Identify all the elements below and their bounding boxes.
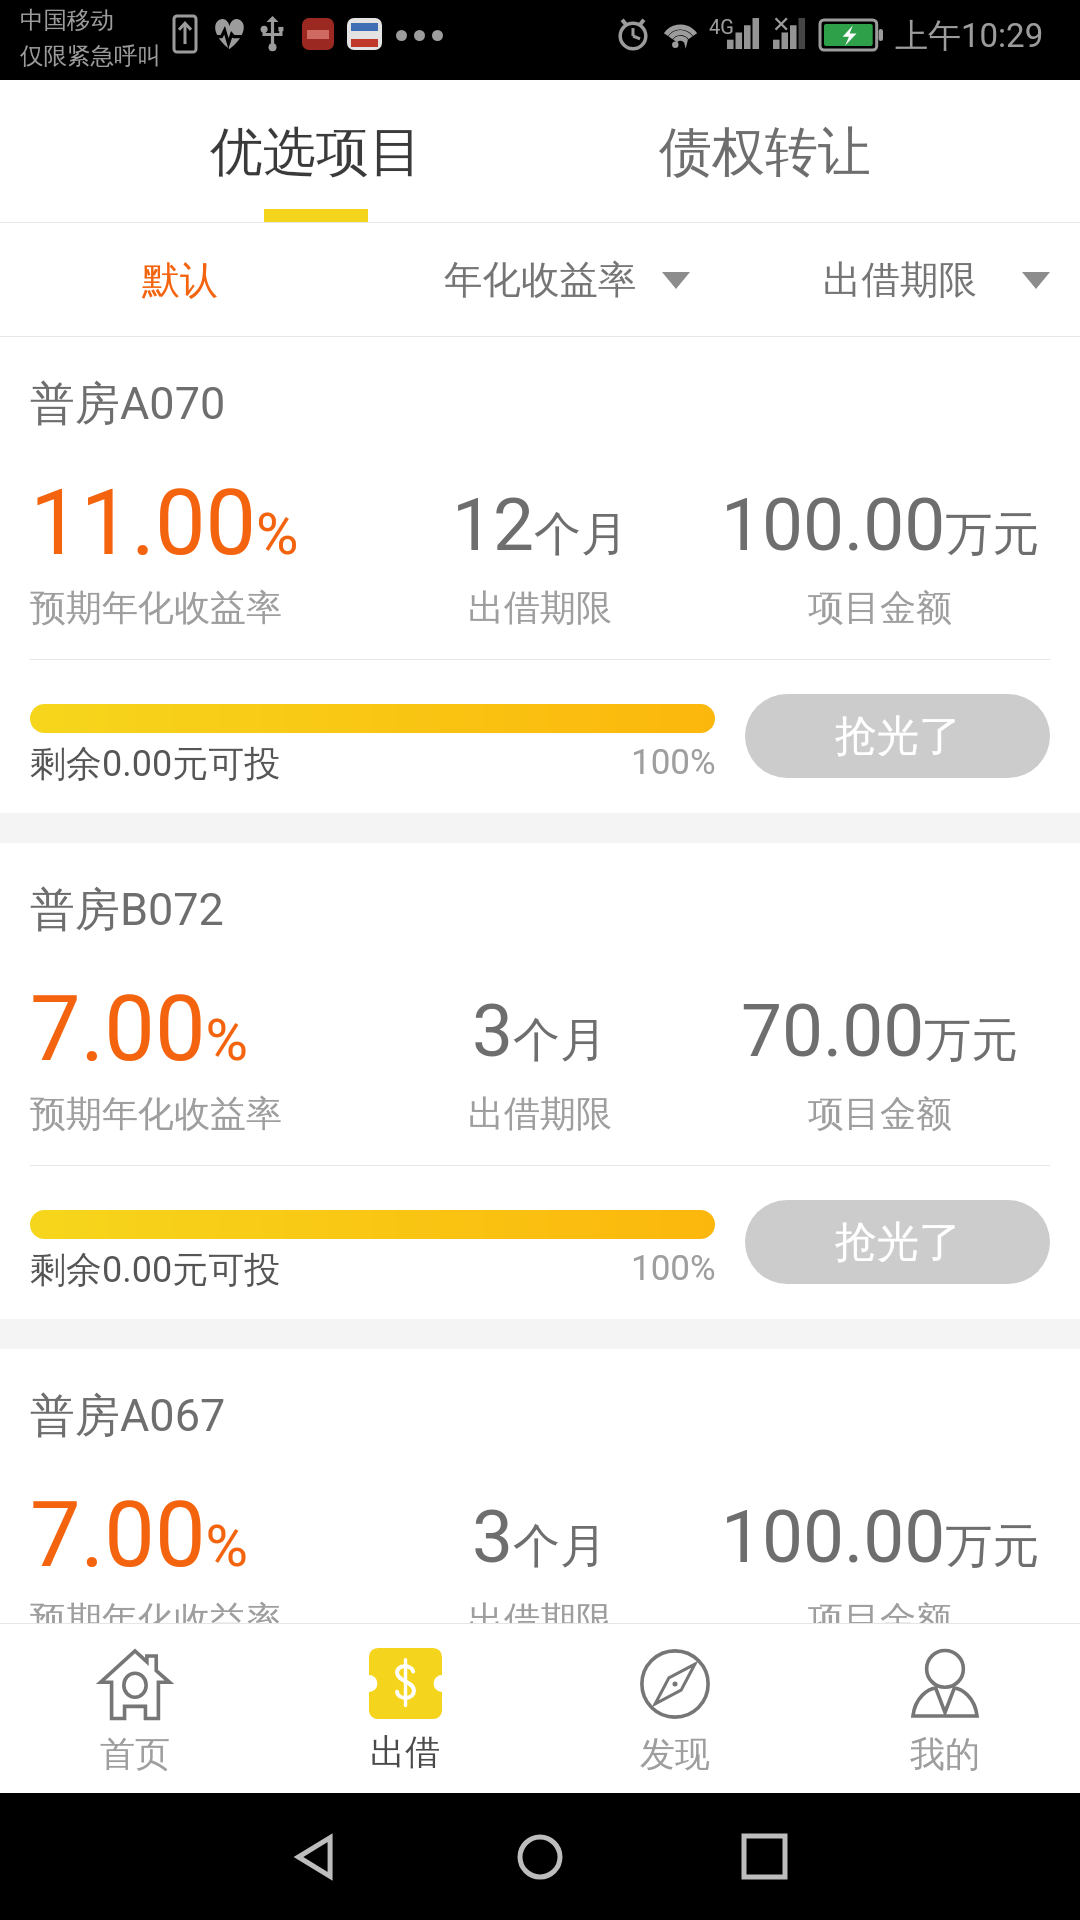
button[interactable]: 优选项目 bbox=[91, 80, 540, 223]
button[interactable]: Recent apps bbox=[652, 1793, 876, 1920]
staticText: 预期年化收益率 bbox=[30, 585, 282, 630]
button[interactable]: 出借期限 bbox=[720, 223, 1080, 337]
button[interactable]: 债权转让 bbox=[540, 80, 989, 223]
staticText: 上午10:29 bbox=[895, 15, 1044, 57]
staticText: 默认 bbox=[142, 256, 218, 304]
staticText: 出借 bbox=[370, 1730, 440, 1774]
staticText: 项目金额 bbox=[808, 1597, 952, 1642]
button[interactable]: Home bbox=[428, 1793, 652, 1920]
staticText: 出借期限 bbox=[468, 585, 612, 630]
staticText: 抢光了 bbox=[835, 710, 961, 763]
button[interactable]: 抢光了 bbox=[745, 694, 1050, 778]
staticText: 发现 bbox=[640, 1732, 710, 1776]
staticText: 100% bbox=[631, 1754, 716, 1795]
staticText: 100% bbox=[631, 742, 716, 783]
button[interactable]: 出借 bbox=[270, 1624, 540, 1793]
button[interactable]: 默认 bbox=[0, 223, 360, 337]
staticText: 优选项目 bbox=[210, 119, 422, 186]
staticText: 100.00万元 bbox=[721, 482, 1040, 568]
staticText: 项目金额 bbox=[808, 1091, 952, 1136]
staticText: 普房A070 bbox=[30, 376, 226, 433]
staticText: 项目金额 bbox=[808, 585, 952, 630]
staticText: 剩余0.00元可投 bbox=[30, 1753, 281, 1798]
staticText: 剩余0.00元可投 bbox=[30, 741, 281, 786]
button[interactable]: Back bbox=[204, 1793, 428, 1920]
staticText: 70.00万元 bbox=[741, 988, 1019, 1074]
staticText: 我的 bbox=[910, 1732, 980, 1776]
staticText: 7.00% bbox=[30, 1483, 248, 1588]
staticText: 出借期限 bbox=[468, 1091, 612, 1136]
staticText: 剩余0.00元可投 bbox=[30, 1247, 281, 1292]
button[interactable]: 年化收益率 bbox=[360, 223, 720, 337]
staticText: 3个月 bbox=[472, 1494, 608, 1580]
button[interactable]: 抢光了 bbox=[745, 1200, 1050, 1284]
staticText: 普房A067 bbox=[30, 1388, 226, 1445]
staticText: ✕ bbox=[772, 12, 791, 38]
staticText: 预期年化收益率 bbox=[30, 1091, 282, 1136]
staticText: 4G bbox=[709, 15, 734, 38]
staticText: 抢光了 bbox=[835, 1216, 961, 1269]
staticText: 12个月 bbox=[452, 482, 629, 568]
button[interactable]: 发现 bbox=[540, 1624, 810, 1793]
button[interactable]: 我的 bbox=[810, 1624, 1080, 1793]
staticText: 仅限紧急呼叫 bbox=[20, 41, 161, 71]
staticText: 中国移动 bbox=[20, 5, 114, 35]
staticText: 3个月 bbox=[472, 988, 608, 1074]
staticText: 100.00万元 bbox=[721, 1494, 1040, 1580]
staticText: 11.00% bbox=[30, 471, 299, 576]
staticText: 出借期限 bbox=[468, 1597, 612, 1642]
staticText: 预期年化收益率 bbox=[30, 1597, 282, 1642]
staticText: 债权转让 bbox=[659, 119, 871, 186]
staticText: 普房B072 bbox=[30, 882, 224, 939]
button[interactable]: 抢光了 bbox=[745, 1706, 1050, 1790]
button[interactable]: 首页 bbox=[0, 1624, 270, 1793]
staticText: 首页 bbox=[100, 1732, 170, 1776]
staticText: 100% bbox=[631, 1248, 716, 1289]
staticText: 7.00% bbox=[30, 977, 248, 1082]
staticText: 年化收益率 bbox=[444, 256, 637, 305]
staticText: 抢光了 bbox=[835, 1722, 961, 1775]
staticText: 出借期限 bbox=[823, 256, 977, 305]
